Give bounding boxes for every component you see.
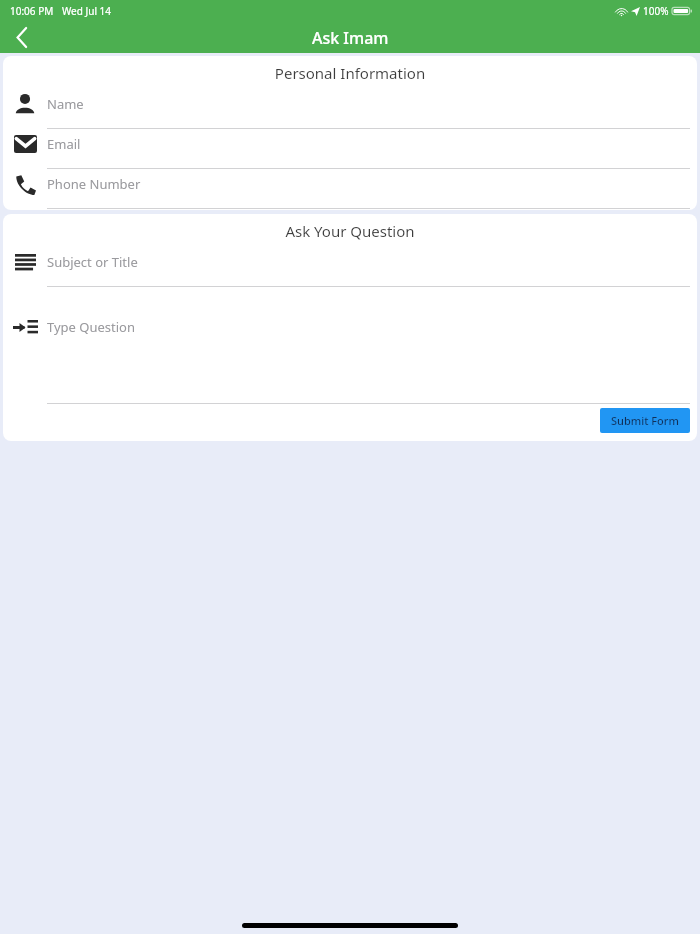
button[interactable]: Name bbox=[3, 89, 697, 129]
button[interactable]: Subject or Title bbox=[3, 247, 697, 287]
button[interactable]: Back bbox=[0, 22, 44, 53]
staticText: Personal Information bbox=[3, 63, 697, 83]
staticText: Type Question bbox=[47, 318, 135, 336]
staticText: Wed Jul 14 bbox=[62, 4, 112, 18]
staticText: Ask Your Question bbox=[3, 221, 697, 241]
staticText: Phone Number bbox=[47, 175, 141, 193]
staticText: Name bbox=[47, 95, 84, 113]
staticText: 10:06 PM bbox=[10, 4, 54, 18]
staticText: Ask Imam bbox=[312, 27, 389, 49]
staticText: Email bbox=[47, 135, 81, 153]
staticText: Subject or Title bbox=[47, 253, 138, 271]
button[interactable]: Type Question bbox=[3, 312, 697, 404]
button[interactable]: Email bbox=[3, 129, 697, 169]
staticText: Submit Form bbox=[611, 413, 679, 428]
button[interactable]: Phone Number bbox=[3, 169, 697, 209]
staticText: 100% bbox=[643, 4, 669, 18]
button[interactable]: Submit Form bbox=[600, 408, 690, 433]
